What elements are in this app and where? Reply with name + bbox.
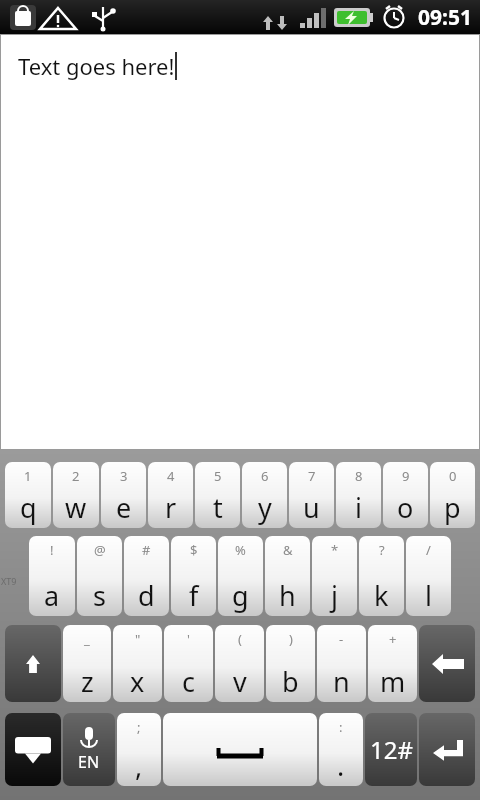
staticText: p: [444, 489, 461, 526]
button[interactable]: Voice input English: [63, 713, 115, 786]
button[interactable]: @: [77, 536, 122, 616]
staticText: Text goes here!: [18, 51, 175, 81]
staticText: l: [425, 577, 432, 614]
staticText: 0: [449, 467, 457, 485]
staticText: b: [282, 663, 299, 700]
button[interactable]: !: [29, 536, 75, 616]
staticText: 2: [72, 467, 80, 485]
staticText: t: [213, 489, 223, 526]
staticText: k: [374, 577, 389, 614]
staticText: XT9: [1, 575, 17, 587]
button[interactable]: ?: [359, 536, 404, 616]
staticText: ,: [135, 747, 143, 784]
staticText: i: [355, 489, 362, 526]
button[interactable]: 1: [5, 462, 51, 528]
staticText: 5: [214, 467, 222, 485]
button[interactable]: ': [164, 625, 213, 702]
staticText: y: [258, 489, 272, 526]
staticText: 09:51: [418, 3, 472, 32]
button[interactable]: Hide keyboard: [5, 713, 61, 786]
staticText: 9: [402, 467, 410, 485]
staticText: j: [331, 577, 338, 614]
button[interactable]: 9: [383, 462, 428, 528]
staticText: q: [20, 489, 37, 526]
staticText: g: [232, 577, 249, 614]
staticText: 12#: [370, 733, 413, 766]
staticText: h: [279, 577, 296, 614]
staticText: f: [189, 577, 199, 614]
staticText: n: [333, 663, 350, 700]
staticText: u: [303, 489, 320, 526]
staticText: EN: [78, 751, 100, 773]
staticText: _: [84, 630, 90, 648]
staticText: x: [130, 663, 145, 700]
staticText: r: [165, 489, 177, 526]
staticText: +: [389, 630, 397, 648]
button[interactable]: ": [113, 625, 162, 702]
staticText: ;: [137, 718, 141, 736]
button[interactable]: +: [368, 625, 417, 702]
staticText: ?: [379, 541, 385, 559]
staticText: 4: [167, 467, 175, 485]
staticText: %: [235, 541, 246, 559]
button[interactable]: :: [319, 713, 363, 786]
staticText: ': [187, 630, 190, 648]
button[interactable]: _: [63, 625, 111, 702]
staticText: !: [50, 541, 54, 559]
button[interactable]: &: [265, 536, 310, 616]
staticText: /: [426, 541, 431, 559]
staticText: -: [339, 630, 344, 648]
staticText: &: [283, 541, 293, 559]
staticText: o: [397, 489, 414, 526]
button[interactable]: *: [312, 536, 357, 616]
staticText: c: [182, 663, 195, 700]
button[interactable]: 2: [53, 462, 99, 528]
button[interactable]: -: [317, 625, 366, 702]
button[interactable]: Space: [163, 713, 317, 786]
button[interactable]: 8: [336, 462, 381, 528]
staticText: #: [142, 541, 151, 559]
staticText: (: [238, 630, 242, 648]
staticText: 8: [355, 467, 363, 485]
button[interactable]: 3: [101, 462, 146, 528]
button[interactable]: 6: [242, 462, 287, 528]
staticText: w: [65, 489, 87, 526]
button[interactable]: $: [171, 536, 216, 616]
staticText: .: [337, 747, 345, 784]
staticText: :: [339, 718, 343, 736]
button[interactable]: %: [218, 536, 263, 616]
staticText: $: [190, 541, 198, 559]
button[interactable]: 4: [148, 462, 193, 528]
staticText: m: [380, 663, 406, 700]
staticText: ": [135, 630, 141, 648]
staticText: ): [289, 630, 293, 648]
button[interactable]: Backspace: [419, 625, 475, 702]
staticText: s: [93, 577, 106, 614]
button[interactable]: ;: [117, 713, 161, 786]
button[interactable]: 0: [430, 462, 475, 528]
button[interactable]: ): [266, 625, 315, 702]
staticText: z: [81, 663, 94, 700]
staticText: 7: [308, 467, 316, 485]
button[interactable]: 7: [289, 462, 334, 528]
staticText: @: [94, 541, 106, 559]
button[interactable]: Enter: [419, 713, 475, 786]
staticText: v: [233, 663, 247, 700]
button[interactable]: /: [406, 536, 451, 616]
button[interactable]: 12#: [365, 713, 417, 786]
staticText: d: [138, 577, 155, 614]
button[interactable]: Shift: [5, 625, 61, 702]
button[interactable]: (: [215, 625, 264, 702]
staticText: 6: [261, 467, 269, 485]
staticText: *: [331, 541, 339, 559]
staticText: a: [44, 577, 60, 614]
staticText: e: [116, 489, 132, 526]
staticText: 1: [24, 467, 32, 485]
button[interactable]: 5: [195, 462, 240, 528]
button[interactable]: #: [124, 536, 169, 616]
staticText: 3: [120, 467, 128, 485]
